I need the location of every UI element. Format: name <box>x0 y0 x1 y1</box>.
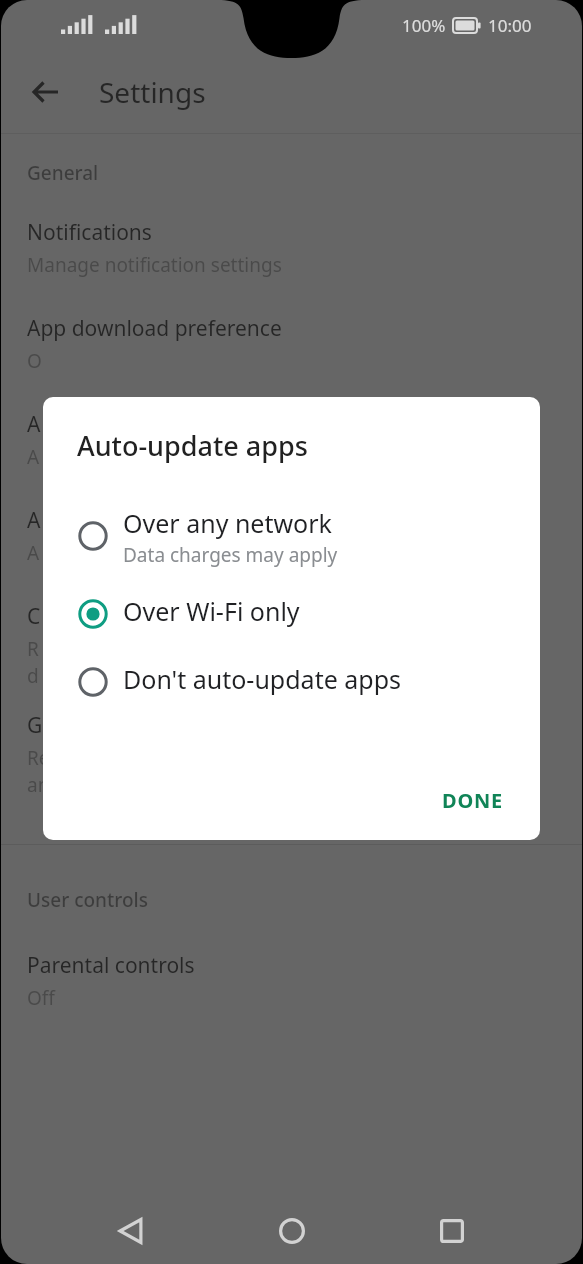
button[interactable]: Over any network <box>43 502 540 572</box>
button[interactable]: Parental controls <box>1 951 582 1011</box>
staticText: Google Play preferences <box>27 711 267 740</box>
staticText: A <box>27 410 41 439</box>
button[interactable]: Don't auto-update apps <box>43 658 540 702</box>
staticText: R d <box>27 636 39 689</box>
button[interactable]: Recent apps <box>421 1200 483 1262</box>
button[interactable]: DONE <box>424 775 522 826</box>
staticText: A <box>27 444 40 470</box>
button[interactable]: Google Play preferences <box>1 711 582 798</box>
button[interactable]: Back <box>100 1200 162 1262</box>
button[interactable]: Over Wi-Fi only <box>43 590 540 634</box>
staticText: DONE <box>442 787 504 814</box>
button[interactable]: App download preference <box>1 314 582 374</box>
button[interactable]: C <box>1 602 582 689</box>
staticText: User controls <box>27 887 148 913</box>
staticText: Parental controls <box>27 951 195 980</box>
staticText: General <box>27 160 99 186</box>
staticText: Settings <box>99 73 206 111</box>
button[interactable]: Home <box>261 1200 323 1262</box>
staticText: Off <box>27 985 55 1011</box>
staticText: C <box>27 602 41 631</box>
button[interactable]: A <box>1 410 582 470</box>
button[interactable]: Notifications <box>1 218 582 278</box>
staticText: Over Wi-Fi only <box>123 594 300 628</box>
staticText: A <box>27 506 41 535</box>
staticText: App download preference <box>27 314 282 343</box>
staticText: O <box>27 348 42 374</box>
staticText: Auto-update apps <box>77 427 308 464</box>
staticText: Manage notification settings <box>27 252 282 278</box>
staticText: 10:00 <box>488 14 532 37</box>
staticText: Remove history in your wishlist, the Bet… <box>27 745 473 798</box>
button[interactable]: Back <box>21 67 71 117</box>
staticText: Don't auto-update apps <box>123 662 402 696</box>
staticText: 100% <box>402 14 446 37</box>
button[interactable]: A <box>1 506 582 566</box>
staticText: Over any network <box>123 506 332 540</box>
staticText: A <box>27 540 40 566</box>
staticText: Notifications <box>27 218 152 247</box>
staticText: Data charges may apply <box>123 542 338 568</box>
